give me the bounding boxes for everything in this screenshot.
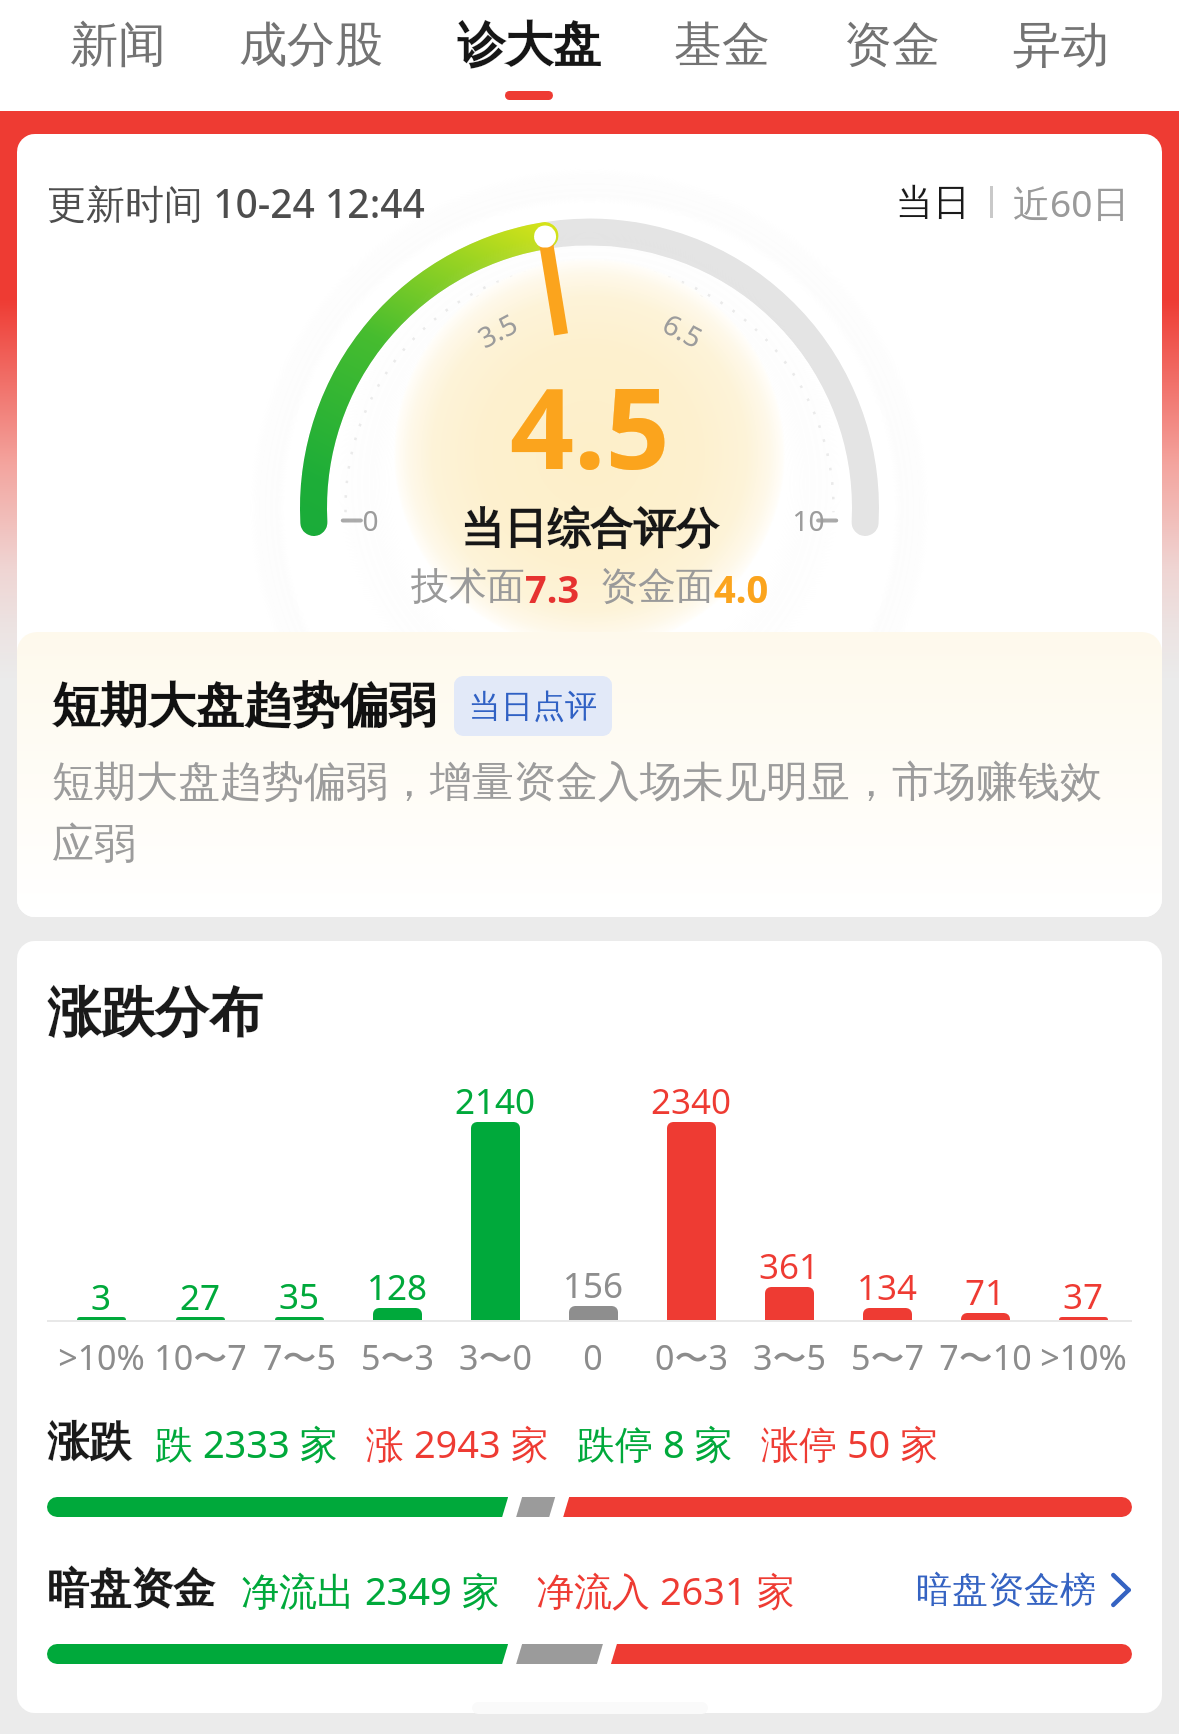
staticText: 净流出 2349 家 — [241, 1564, 500, 1616]
staticText: 3〜5 — [753, 1334, 826, 1380]
staticText: 4.5 — [510, 349, 670, 502]
button[interactable]: 诊大盘 — [457, 0, 601, 111]
staticText: 新闻 — [70, 15, 166, 75]
staticText: 4.0 — [714, 562, 769, 614]
staticText: 0 — [583, 1334, 603, 1380]
staticText: 跌停 8 家 — [577, 1417, 733, 1469]
staticText: 156 — [563, 1261, 624, 1306]
staticText: 净流入 2631 家 — [536, 1564, 795, 1616]
staticText: 涨跌分布 — [47, 979, 263, 1047]
staticText: 成分股 — [239, 15, 383, 75]
staticText: >10% — [58, 1334, 145, 1380]
button[interactable]: 异动 — [1013, 0, 1109, 111]
staticText: 5〜7 — [851, 1334, 924, 1380]
staticText: 暗盘资金榜 — [916, 1567, 1096, 1612]
staticText: 128 — [367, 1263, 428, 1308]
staticText: 3 — [91, 1273, 112, 1318]
staticText: 2340 — [651, 1077, 732, 1122]
staticText: 涨 2943 家 — [366, 1417, 549, 1469]
staticText: 当日 — [896, 179, 970, 226]
staticText: 7.3 — [525, 562, 580, 614]
staticText: 10〜7 — [154, 1334, 247, 1380]
staticText: >10% — [1040, 1334, 1127, 1380]
staticText: 资金面 — [600, 562, 714, 610]
button[interactable]: 基金 — [674, 0, 770, 111]
staticText: 当日综合评分 — [461, 502, 719, 556]
staticText: 37 — [1063, 1272, 1104, 1317]
staticText: 涨跌 — [47, 1416, 131, 1469]
staticText: 35 — [279, 1272, 320, 1317]
staticText: 技术面 — [411, 562, 525, 610]
button[interactable]: 近60日 — [1013, 177, 1130, 228]
staticText: 诊大盘 — [457, 15, 601, 75]
staticText: 短期大盘趋势偏弱 — [52, 676, 436, 736]
staticText: 7〜5 — [263, 1334, 336, 1380]
button[interactable]: 资金 — [844, 0, 940, 111]
button[interactable]: 成分股 — [239, 0, 383, 111]
staticText: 2140 — [455, 1077, 536, 1122]
staticText: 7〜10 — [939, 1334, 1032, 1380]
staticText: 3〜0 — [459, 1334, 532, 1380]
staticText: 361 — [759, 1242, 820, 1287]
staticText: 基金 — [674, 15, 770, 75]
staticText: 27 — [180, 1273, 221, 1318]
staticText: 跌 2333 家 — [155, 1417, 338, 1469]
staticText: 5〜3 — [361, 1334, 434, 1380]
button[interactable]: 暗盘资金榜 — [916, 1567, 1132, 1612]
other: 暗盘资金榜 — [1110, 1573, 1132, 1607]
button[interactable]: 新闻 — [70, 0, 166, 111]
staticText: 当日点评 — [469, 686, 597, 726]
staticText: 涨停 50 家 — [761, 1417, 939, 1469]
staticText: 暗盘资金 — [47, 1563, 215, 1616]
button[interactable]: 当日 — [896, 179, 970, 226]
staticText: 0〜3 — [655, 1334, 728, 1380]
staticText: 0 — [362, 501, 379, 539]
staticText: 3.5 — [470, 304, 524, 356]
staticText: 近60日 — [1013, 177, 1130, 228]
staticText: 更新时间 10-24 12:44 — [47, 176, 425, 229]
staticText: 10 — [792, 501, 825, 539]
staticText: 异动 — [1013, 15, 1109, 75]
staticText: 资金 — [844, 15, 940, 75]
staticText: 134 — [857, 1263, 918, 1308]
staticText: 71 — [965, 1268, 1006, 1313]
staticText: 短期大盘趋势偏弱，增量资金入场未见明显，市场赚钱效应弱 — [52, 756, 1132, 871]
staticText: 6.5 — [656, 304, 710, 356]
